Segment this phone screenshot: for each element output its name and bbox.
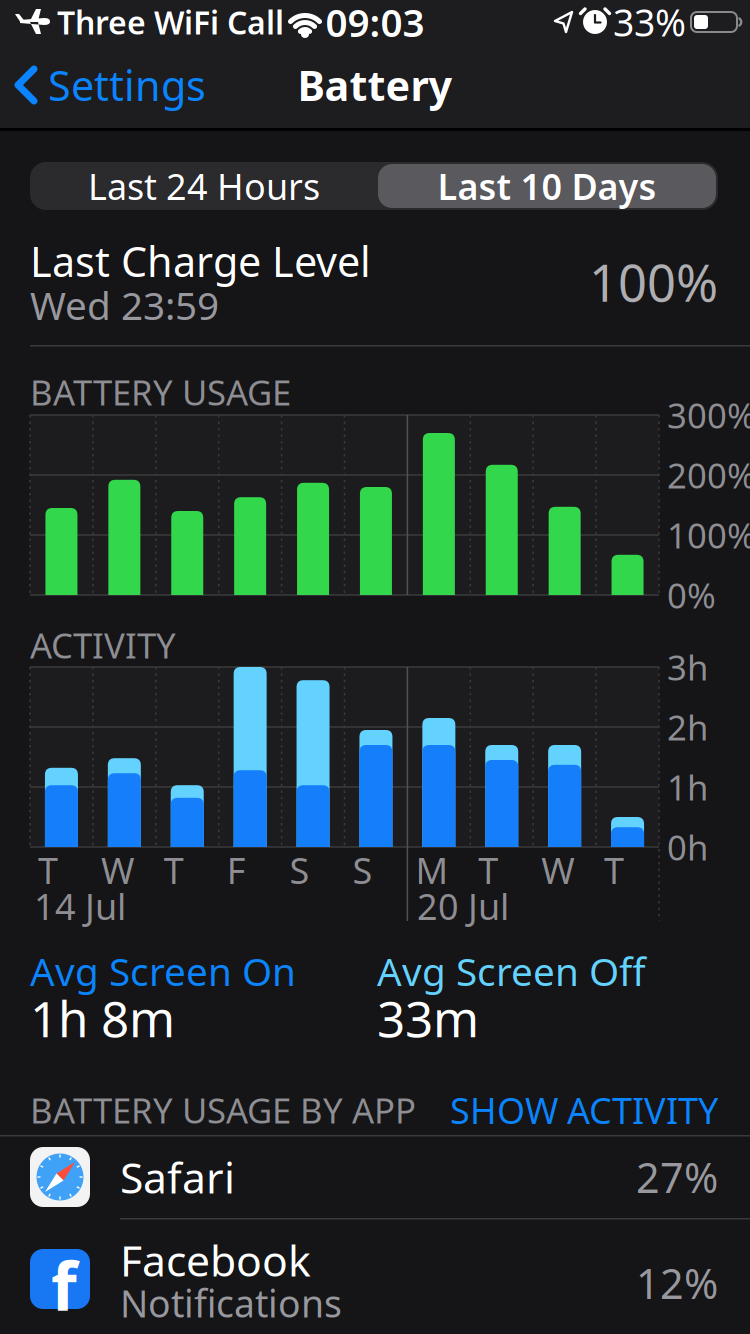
- staticText: 100%: [589, 248, 718, 316]
- staticText: 20 Jul: [417, 882, 509, 930]
- button[interactable]: Safari: [0, 1136, 750, 1218]
- staticText: 3h: [667, 644, 708, 690]
- staticText: S: [352, 846, 372, 894]
- button[interactable]: Settings: [14, 55, 294, 115]
- staticText: 0%: [667, 572, 716, 618]
- staticText: 27%: [636, 1150, 718, 1204]
- staticText: f: [51, 1241, 77, 1329]
- staticText: Last Charge Level: [30, 234, 371, 288]
- staticText: T: [38, 846, 58, 894]
- staticText: BATTERY USAGE: [30, 369, 291, 415]
- staticText: Last 24 Hours: [88, 162, 320, 210]
- staticText: 14 Jul: [34, 882, 126, 930]
- staticText: T: [604, 846, 624, 894]
- staticText: 0h: [667, 824, 708, 870]
- staticText: ACTIVITY: [30, 622, 176, 668]
- staticText: Three WiFi Call: [57, 1, 284, 43]
- staticText: S: [290, 846, 310, 894]
- staticText: 12%: [636, 1256, 718, 1310]
- staticText: 09:03: [325, 0, 424, 48]
- button[interactable]: Last 10 Days: [377, 162, 717, 210]
- button[interactable]: Last 24 Hours: [34, 162, 374, 210]
- staticText: 300%: [667, 392, 750, 438]
- staticText: T: [164, 846, 184, 894]
- staticText: W: [101, 846, 134, 894]
- staticText: T: [478, 846, 498, 894]
- staticText: 2h: [667, 704, 708, 750]
- staticText: Battery: [297, 58, 452, 112]
- staticText: BATTERY USAGE BY APP: [30, 1087, 416, 1133]
- staticText: 1h: [667, 764, 708, 810]
- button[interactable]: f: [0, 1219, 750, 1334]
- staticText: Notifications: [120, 1278, 342, 1328]
- staticText: 33%: [613, 0, 686, 47]
- staticText: Avg Screen On: [30, 945, 296, 997]
- staticText: Avg Screen Off: [377, 945, 646, 997]
- staticText: 100%: [667, 512, 750, 558]
- staticText: Wed 23:59: [30, 279, 219, 331]
- staticText: F: [227, 846, 246, 894]
- button[interactable]: SHOW ACTIVITY: [418, 1086, 718, 1134]
- staticText: Facebook: [120, 1232, 311, 1288]
- staticText: Last 10 Days: [437, 162, 656, 210]
- staticText: 33m: [377, 985, 479, 1051]
- staticText: W: [541, 846, 574, 894]
- staticText: M: [415, 846, 448, 894]
- staticText: 1h 8m: [30, 985, 175, 1051]
- staticText: Settings: [48, 58, 206, 112]
- staticText: Safari: [120, 1149, 235, 1205]
- staticText: SHOW ACTIVITY: [450, 1086, 718, 1134]
- staticText: 200%: [667, 452, 750, 498]
